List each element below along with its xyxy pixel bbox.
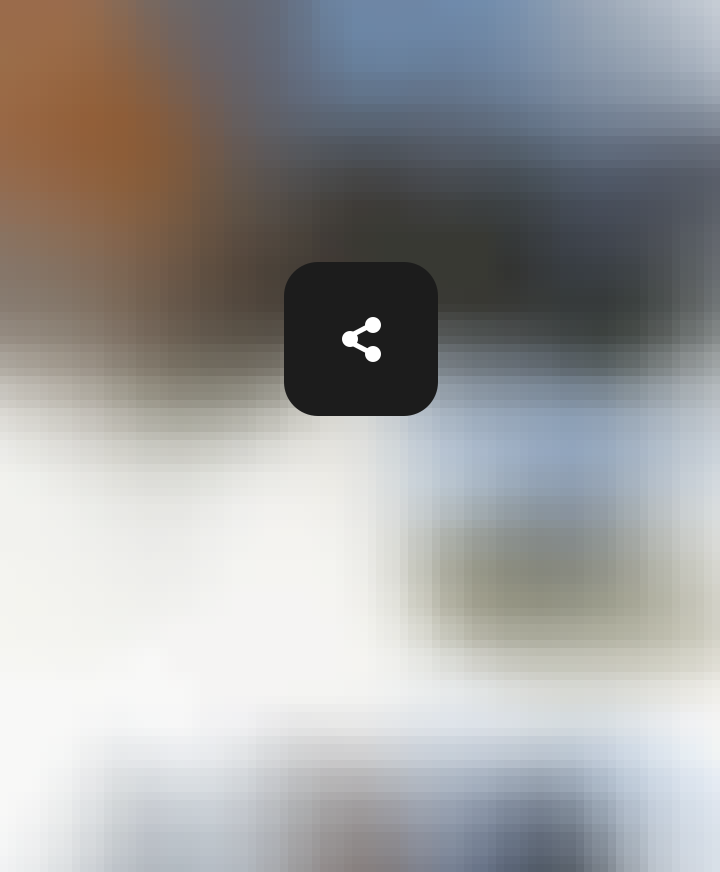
button[interactable]: Share (284, 262, 438, 416)
